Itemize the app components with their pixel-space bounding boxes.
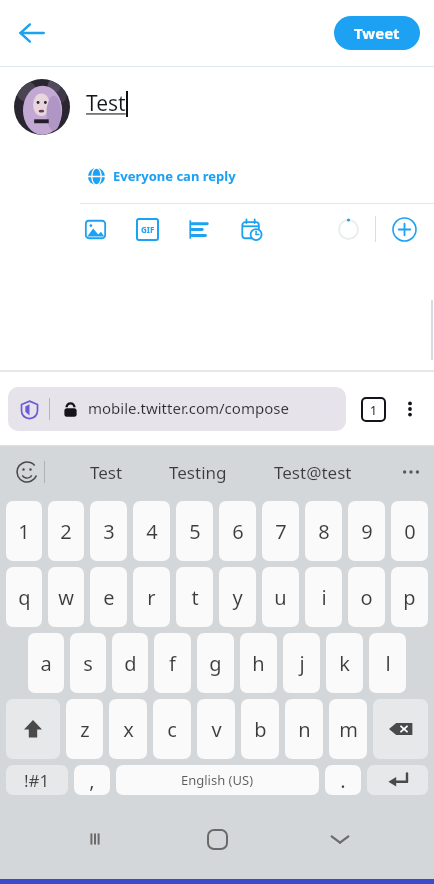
button[interactable]: c [153,699,191,759]
button[interactable]: 9 [348,501,385,561]
button[interactable]: Back [8,9,56,57]
button[interactable]: g [197,633,234,693]
button[interactable]: t [176,567,213,627]
staticText: 6 [232,518,244,545]
button[interactable]: l [369,633,406,693]
staticText: 5 [189,518,201,545]
button[interactable]: Add photo [80,214,110,244]
button[interactable]: 5 [176,501,213,561]
staticText: , [89,767,95,794]
staticText: 2 [60,518,72,545]
button[interactable]: e [90,567,127,627]
button[interactable]: Recent apps [67,811,123,867]
button[interactable]: Backspace [373,699,428,759]
staticText: b [254,716,267,743]
button[interactable]: Add tweet [388,213,420,245]
button[interactable]: z [66,699,103,759]
button[interactable]: Test@test [266,455,360,490]
staticText: g [209,650,222,677]
button[interactable]: m [329,699,367,759]
button[interactable]: q [6,567,42,627]
button[interactable]: r [133,567,170,627]
staticText: Test [86,89,126,118]
staticText: a [40,650,52,677]
staticText: Testing [169,461,227,484]
staticText: Test [90,461,123,484]
button[interactable]: 0 [391,501,428,561]
button[interactable]: b [241,699,279,759]
button[interactable]: 1 [6,501,42,561]
button[interactable]: k [326,633,363,693]
staticText: l [385,650,391,677]
staticText: 3 [103,518,115,545]
button[interactable]: mobile.twitter.com/compose [8,387,346,431]
button[interactable]: 8 [305,501,342,561]
staticText: i [321,584,327,611]
button[interactable]: !#1 [6,765,68,795]
button[interactable]: u [262,567,299,627]
button[interactable]: 4 [133,501,170,561]
button[interactable]: w [48,567,84,627]
button[interactable]: s [70,633,106,693]
staticText: 1 [18,518,30,545]
staticText: y [232,584,243,611]
button[interactable]: Tweet [334,16,420,50]
staticText: . [340,767,346,794]
button[interactable]: Enter [367,765,428,795]
button[interactable]: 7 [262,501,299,561]
button[interactable]: v [197,699,235,759]
button[interactable]: Character count [333,214,363,244]
button[interactable]: Test [82,455,131,490]
button[interactable]: 3 [90,501,127,561]
button[interactable]: Tabs [356,392,390,426]
staticText: mobile.twitter.com/compose [88,398,289,418]
button[interactable]: a [28,633,64,693]
button[interactable]: o [348,567,385,627]
staticText: Tweet [354,23,400,43]
button[interactable]: 6 [219,501,256,561]
staticText: English (US) [181,771,254,789]
button[interactable]: English (US) [116,765,319,795]
button[interactable]: Schedule tweet [236,214,266,244]
button[interactable]: 2 [48,501,84,561]
staticText: w [58,584,74,611]
staticText: u [274,584,287,611]
staticText: q [18,584,31,611]
button[interactable]: . [325,765,361,795]
staticText: o [360,584,373,611]
button[interactable]: Add poll [184,214,214,244]
staticText: 4 [146,518,158,545]
button[interactable]: Hide keyboard [312,811,368,867]
staticText: v [211,716,222,743]
staticText: z [80,716,90,743]
button[interactable]: d [112,633,148,693]
button[interactable]: p [391,567,428,627]
staticText: !#1 [24,769,50,792]
staticText: k [339,650,350,677]
button[interactable]: Emoji [10,455,44,489]
button[interactable]: x [109,699,147,759]
button[interactable]: n [285,699,323,759]
button[interactable]: f [154,633,191,693]
button[interactable]: Add GIF [132,214,162,244]
button[interactable]: More suggestions [396,457,426,487]
button[interactable]: Testing [161,455,235,490]
button[interactable]: i [305,567,342,627]
button[interactable]: More options [394,393,426,425]
staticText: x [123,716,134,743]
button[interactable]: j [283,633,320,693]
staticText: Test@test [274,461,352,484]
button[interactable]: Shift [6,699,60,759]
button[interactable]: , [74,765,110,795]
staticText: t [191,584,199,611]
staticText: h [252,650,265,677]
button[interactable]: Home [189,811,245,867]
button[interactable]: Everyone can reply [86,163,238,189]
staticText: r [147,584,156,611]
staticText: 0 [404,518,416,545]
button[interactable]: h [240,633,277,693]
staticText: j [299,650,305,677]
staticText: s [83,650,93,677]
button[interactable]: y [219,567,256,627]
staticText: d [124,650,137,677]
